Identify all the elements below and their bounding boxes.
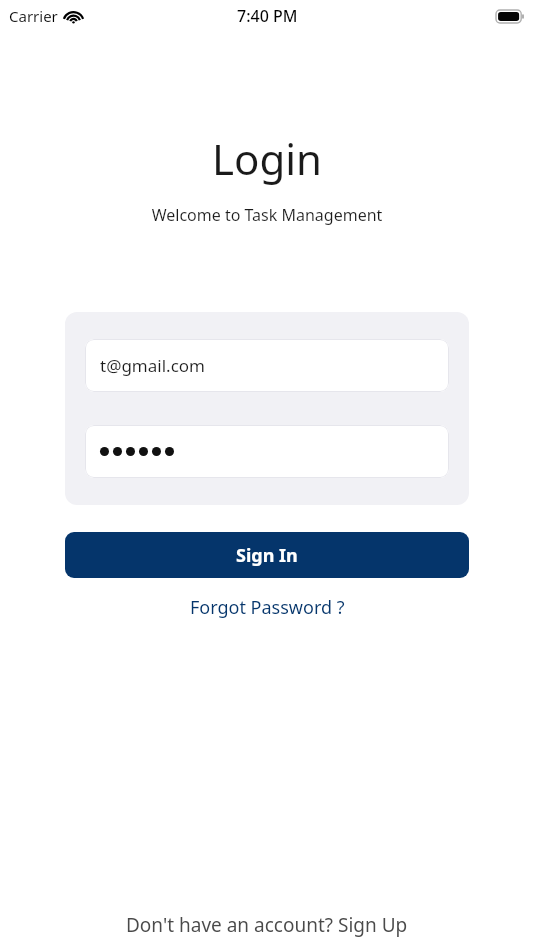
button[interactable]: t@gmail.com bbox=[85, 339, 449, 392]
button[interactable]: Forgot Password ? bbox=[0, 595, 534, 620]
staticText: Welcome to Task Management bbox=[0, 204, 534, 226]
button[interactable]: Sign In bbox=[65, 532, 469, 578]
staticText: 7:40 PM bbox=[237, 5, 298, 27]
staticText: Forgot Password ? bbox=[190, 595, 345, 620]
staticText: Don't have an account? Sign Up bbox=[126, 912, 408, 938]
staticText: Login bbox=[0, 130, 534, 187]
staticText: Sign In bbox=[236, 543, 298, 568]
button[interactable] bbox=[85, 425, 449, 478]
staticText: Carrier bbox=[9, 6, 58, 26]
staticText: t@gmail.com bbox=[100, 354, 205, 377]
button[interactable]: Don't have an account? Sign Up bbox=[0, 912, 534, 950]
